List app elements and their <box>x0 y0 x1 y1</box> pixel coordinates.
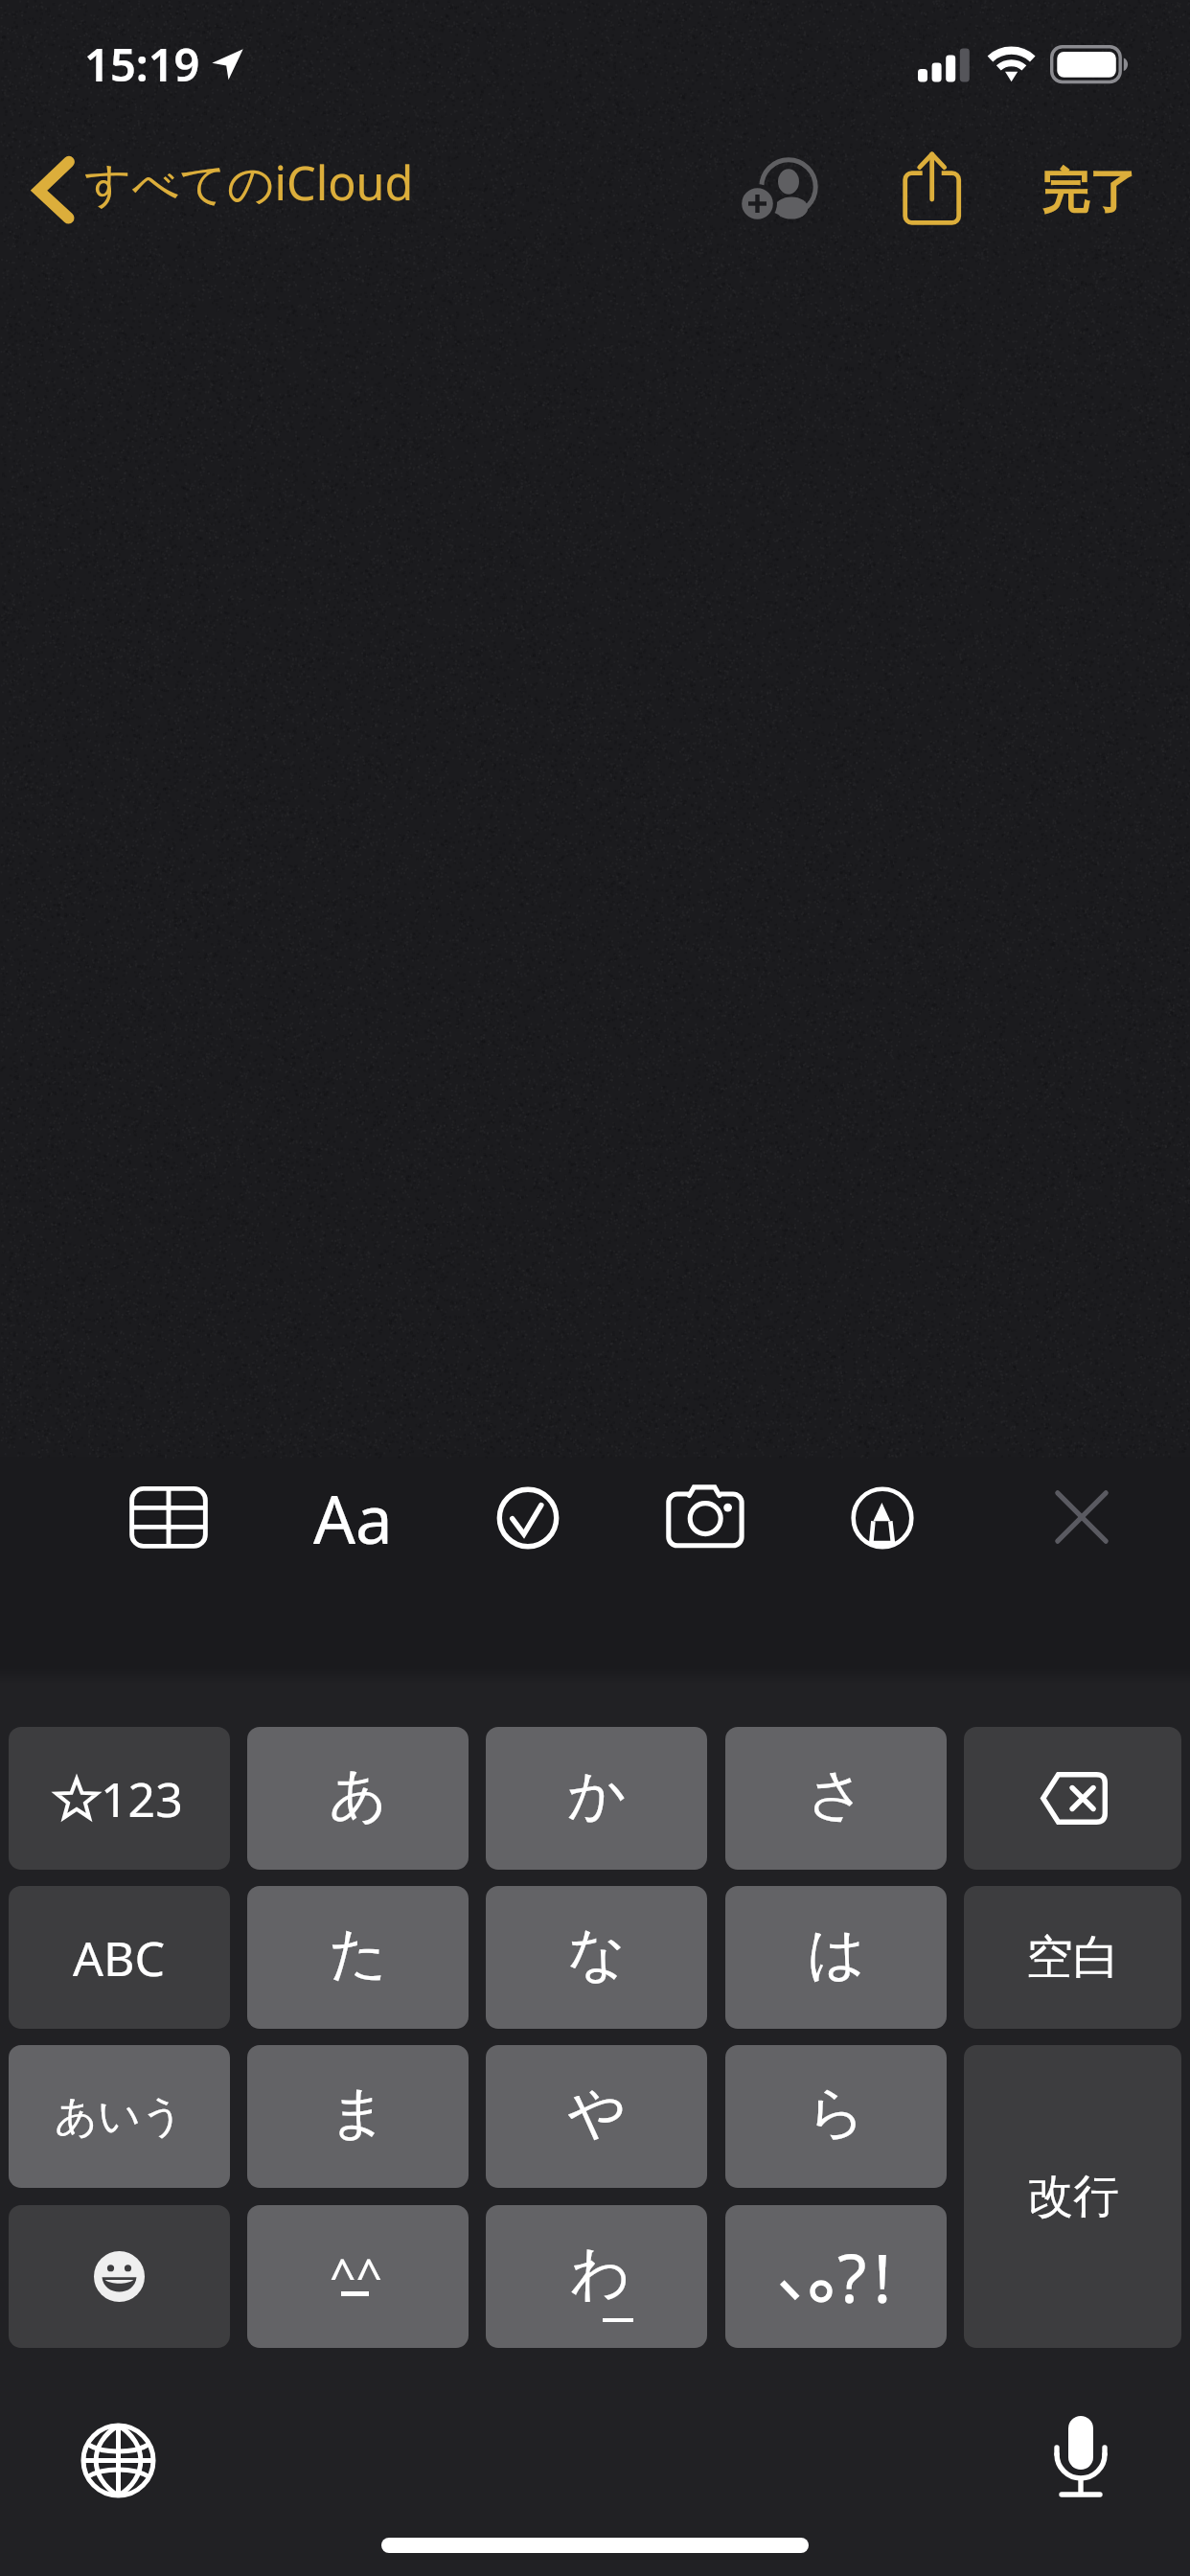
button[interactable]: さ <box>725 1727 947 1870</box>
button[interactable]: Add people <box>736 134 841 240</box>
button[interactable]: ?! <box>725 2205 947 2348</box>
staticText: わ <box>570 2236 631 2311</box>
button[interactable]: Markup <box>830 1464 935 1570</box>
button[interactable]: Checklist <box>475 1464 581 1570</box>
staticText: 15:19 <box>84 34 200 95</box>
button[interactable]: Dictation <box>1023 2399 1138 2514</box>
button[interactable]: ま <box>247 2045 469 2188</box>
button[interactable]: Share <box>880 146 985 251</box>
staticText: か <box>567 1759 627 1831</box>
button[interactable]: ^^ <box>247 2205 469 2348</box>
button[interactable]: ら <box>725 2045 947 2188</box>
staticText: 改行 <box>1027 2168 1119 2225</box>
button[interactable]: な <box>486 1886 707 2029</box>
staticText: ABC <box>73 1925 166 1990</box>
button[interactable]: Table <box>116 1464 221 1570</box>
button[interactable]: あいう <box>9 2045 230 2188</box>
staticText: あ <box>329 1759 388 1831</box>
staticText: すべてのiCloud <box>84 150 414 214</box>
staticText: ま <box>329 2077 388 2150</box>
staticText: 123 <box>101 1766 183 1831</box>
button[interactable]: 完了 <box>1024 149 1155 235</box>
button[interactable]: Change keyboard <box>60 2403 175 2518</box>
staticText: さ <box>807 1759 866 1831</box>
button[interactable]: 空白 <box>964 1886 1181 2029</box>
button[interactable]: Camera <box>652 1464 758 1570</box>
staticText: な <box>567 1918 627 1990</box>
staticText: は <box>807 1918 866 1990</box>
staticText: 空白 <box>1026 1928 1120 1988</box>
staticText: あいう <box>55 2090 185 2143</box>
staticText: 完了 <box>1041 162 1137 222</box>
button[interactable]: た <box>247 1886 469 2029</box>
staticText: た <box>329 1918 388 1990</box>
staticText: ?! <box>837 2231 899 2322</box>
staticText: や <box>567 2077 627 2150</box>
button[interactable]: 123 <box>9 1727 230 1870</box>
button[interactable]: 改行 <box>964 2045 1181 2348</box>
button[interactable]: わ <box>486 2205 707 2348</box>
button[interactable]: あ <box>247 1727 469 1870</box>
button[interactable]: は <box>725 1886 947 2029</box>
button[interactable] <box>964 1727 1181 1870</box>
button[interactable]: や <box>486 2045 707 2188</box>
staticText: ら <box>807 2077 866 2150</box>
button[interactable]: Text format <box>300 1464 405 1570</box>
staticText: Aa <box>313 1473 393 1563</box>
button[interactable]: すべてのiCloud <box>23 144 425 234</box>
button[interactable] <box>9 2205 230 2348</box>
button[interactable]: Close <box>1029 1464 1134 1570</box>
button[interactable]: か <box>486 1727 707 1870</box>
staticText: ^^ <box>330 2243 382 2306</box>
button[interactable]: ABC <box>9 1886 230 2029</box>
